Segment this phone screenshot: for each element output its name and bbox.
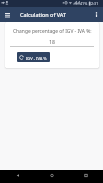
button[interactable]: Recent apps: [69, 170, 103, 183]
staticText: 2:31: [91, 1, 99, 6]
staticText: 18: [10, 38, 94, 45]
staticText: Calculation of VAT: [20, 11, 67, 18]
button[interactable]: Back: [0, 170, 35, 183]
staticText: 41%: [80, 1, 88, 6]
staticText: IGV - IVA %: [26, 56, 47, 61]
button[interactable]: Home: [35, 170, 69, 183]
button[interactable]: About: [90, 7, 103, 22]
button[interactable]: IGV - IVA %: [17, 52, 50, 62]
button[interactable]: Open navigation menu: [0, 7, 15, 22]
staticText: Change percentage of IGV - IVA %:: [13, 28, 92, 35]
